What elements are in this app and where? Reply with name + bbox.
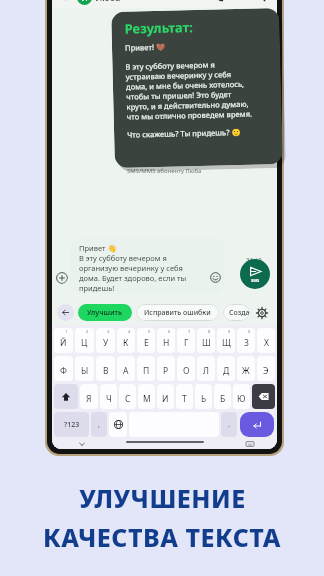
staticText: Р [163,365,169,377]
staticText: Д [223,365,230,377]
button[interactable]: Call [211,0,227,5]
button[interactable]: 7 [177,328,195,353]
button[interactable]: О [177,356,195,381]
staticText: 0 [248,329,251,334]
staticText: З [244,337,249,349]
button[interactable]: 9 [217,328,235,353]
staticText: Й [60,337,67,349]
button[interactable]: 5 [137,328,155,353]
staticText: Привет 👋 [79,243,117,253]
staticText: 4 [128,329,131,334]
button[interactable]: 0 [237,328,255,353]
staticText: Исправить ошибки [144,308,211,318]
button[interactable]: П [137,356,155,381]
button[interactable]: Ы [75,356,94,381]
staticText: Ы [81,365,89,377]
button[interactable]: Ь [195,384,212,409]
button[interactable]: С [119,384,136,409]
staticText: 3 [107,329,110,334]
button[interactable]: Ч [100,384,117,409]
staticText: SMS/MMS абоненту Люба [127,167,202,175]
staticText: . [228,420,230,430]
button[interactable]: Emoji [209,271,222,284]
staticText: В эту субботу вечером я [79,253,167,263]
staticText: А [123,365,129,377]
staticText: УЛУЧШЕНИЕ [79,481,246,515]
button[interactable]: Settings [253,304,270,321]
staticText: М [143,393,151,405]
button[interactable]: Д [217,356,235,381]
staticText: дома, и мне бы очень хотелось, [126,79,245,92]
button[interactable]: Т [176,384,193,409]
button[interactable]: Улучшить [87,304,123,321]
button[interactable]: И [157,384,174,409]
button[interactable]: 4 [117,328,135,353]
button[interactable]: Ф [54,356,73,381]
staticText: В [103,365,109,377]
button[interactable]: Р [157,356,175,381]
button[interactable]: Ю [233,384,250,409]
button[interactable]: Б [214,384,231,409]
staticText: 9 [228,329,231,334]
button[interactable]: Backspace [252,384,275,409]
staticText: чтобы ты пришел! Это будет [126,89,231,102]
staticText: Привет! 🤎 [125,42,166,53]
button[interactable]: More options [257,0,271,4]
button[interactable]: Send SMS [240,259,270,289]
staticText: В эту субботу вечером я [125,59,215,72]
button[interactable]: Исправить ошибки [144,304,211,321]
button[interactable]: 2 [75,328,94,353]
button[interactable]: А [117,356,135,381]
button[interactable]: Back [58,0,74,5]
button[interactable]: Л [197,356,215,381]
staticText: SMS [251,278,260,283]
staticText: что мы отлично проведем время. [127,109,253,122]
staticText: Ь [201,393,207,405]
staticText: Л [203,365,209,377]
button[interactable]: Ж [237,356,255,381]
button[interactable]: Я [80,384,98,409]
staticText: Ф [60,365,67,377]
staticText: Люба [96,0,121,3]
button[interactable]: Э [257,356,275,381]
button[interactable]: Созда [223,304,250,321]
button[interactable]: Keyboard layout [245,439,254,448]
staticText: устраиваю вечеринку у себя [126,69,232,82]
staticText: Ч [106,393,112,405]
staticText: Х [264,337,269,349]
button[interactable]: Shift [54,384,78,409]
staticText: И [162,393,169,405]
staticText: круто, и я действительно думаю, [126,99,249,112]
button[interactable]: Hide keyboard [77,439,86,448]
button[interactable]: Привет 👋 [70,237,225,294]
button[interactable]: В [96,356,115,381]
staticText: 2 [86,329,89,334]
staticText: 34 / 2 [246,256,262,264]
staticText: 5 [148,329,151,334]
button[interactable]: ?123 [54,412,89,437]
button[interactable]: 6 [157,328,175,353]
button[interactable]: Enter [240,412,274,437]
button[interactable]: . [221,412,237,437]
button[interactable]: , [91,412,107,437]
button[interactable]: 3 [96,328,115,353]
staticText: Я [86,393,92,405]
staticText: 6 [168,329,171,334]
button[interactable]: Х [257,328,275,353]
button[interactable]: Change language [109,412,127,437]
staticText: ?123 [64,420,80,430]
button[interactable]: Add attachment [55,271,68,284]
staticText: Т [182,393,187,405]
button[interactable]: М [138,384,155,409]
staticText: Щ [222,337,231,349]
staticText: Что скажешь? Ты придешь? 🙂 [127,127,241,140]
staticText: Л [82,0,88,3]
button[interactable]: 8 [197,328,215,353]
button[interactable]: Back [57,304,74,321]
staticText: Н [163,337,170,349]
button[interactable]: 1 [54,328,73,353]
staticText: Созда [229,308,250,318]
staticText: 1 [65,329,68,334]
